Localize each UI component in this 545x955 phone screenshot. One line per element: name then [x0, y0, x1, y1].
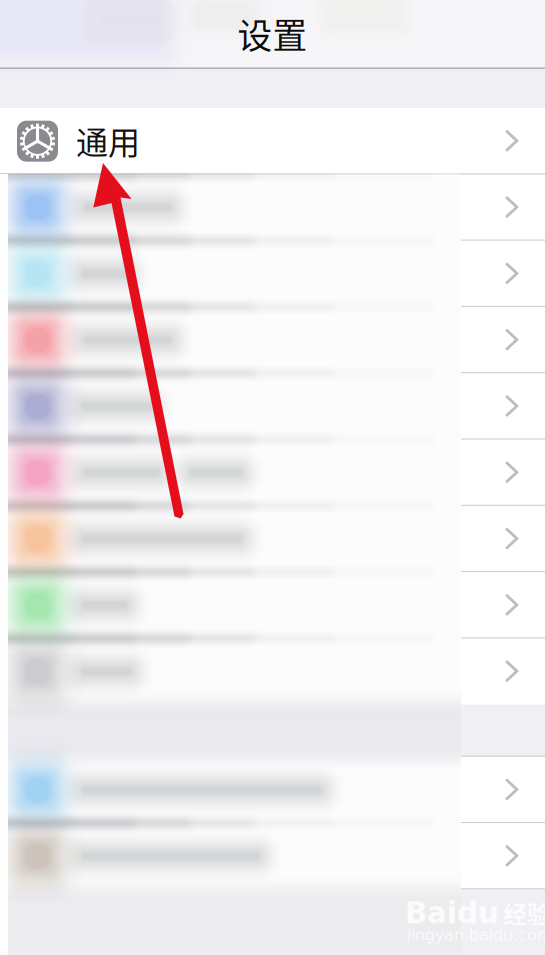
staticText: jingyan.baidu.com — [407, 926, 545, 944]
button[interactable]: 设置 — [0, 445, 545, 510]
button[interactable]: 设置 — [0, 445, 545, 510]
button[interactable]: 设置 — [0, 445, 545, 510]
button[interactable]: 设置 — [0, 445, 545, 510]
button[interactable]: 设置 — [0, 445, 545, 510]
button[interactable]: 设置 — [0, 445, 545, 510]
staticText: 经验 — [503, 896, 545, 930]
button[interactable]: 设置 — [0, 445, 545, 510]
staticText: Baidu — [405, 896, 499, 930]
staticText: 设置 — [237, 9, 307, 59]
button[interactable]: 设置 — [0, 445, 545, 510]
button[interactable] — [0, 445, 545, 510]
button[interactable]: 设置 — [0, 445, 545, 510]
button[interactable]: 设置 — [0, 445, 545, 510]
staticText: 通用 — [76, 117, 140, 164]
